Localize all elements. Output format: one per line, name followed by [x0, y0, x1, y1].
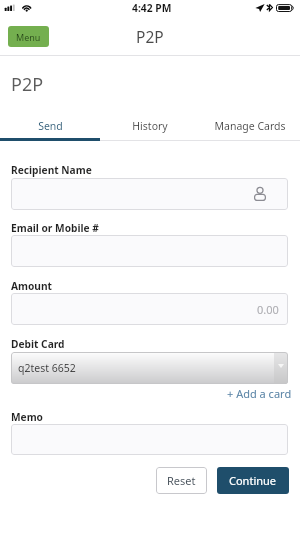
staticText: Continue	[229, 473, 277, 488]
button[interactable]	[11, 235, 288, 267]
button[interactable]: 0.00	[11, 293, 288, 325]
button[interactable]: Reset	[156, 467, 207, 494]
staticText: Reset	[167, 473, 196, 488]
staticText: P2P	[11, 72, 44, 97]
staticText: Manage Cards	[214, 119, 286, 133]
button[interactable]: Choose contact	[11, 178, 288, 210]
staticText: Amount	[11, 279, 53, 293]
staticText: Recipient Name	[11, 163, 92, 177]
staticText: Send	[38, 119, 63, 133]
button[interactable]: q2test 6652	[11, 352, 288, 384]
button[interactable]: History	[100, 114, 200, 137]
staticText: 0.00	[257, 302, 279, 317]
staticText: P2P	[136, 26, 164, 47]
button[interactable]: + Add a card	[227, 386, 292, 401]
button[interactable]: Menu	[8, 26, 49, 47]
staticText: q2test 6652	[18, 361, 76, 375]
button[interactable]: Choose contact	[248, 182, 272, 206]
staticText: Email or Mobile #	[11, 221, 99, 235]
button[interactable]: Continue	[217, 467, 289, 494]
button[interactable]: Manage Cards	[200, 114, 300, 137]
staticText: History	[132, 119, 168, 133]
staticText: Debit Card	[11, 337, 65, 351]
staticText: 4:42 PM	[132, 1, 172, 15]
staticText: Menu	[16, 31, 41, 43]
staticText: Memo	[11, 410, 43, 424]
button[interactable]: Send	[0, 114, 100, 137]
button[interactable]	[11, 424, 288, 455]
